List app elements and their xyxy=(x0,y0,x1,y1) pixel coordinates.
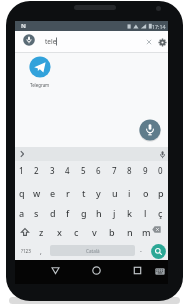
staticText: e xyxy=(50,187,56,199)
staticText: y xyxy=(96,187,101,199)
button[interactable]: 9 xyxy=(138,163,153,177)
button[interactable]: z xyxy=(34,225,49,239)
staticText: 5 xyxy=(81,165,86,176)
staticText: q xyxy=(19,187,25,199)
button[interactable]: , xyxy=(36,244,46,258)
button[interactable]: e xyxy=(45,186,60,200)
staticText: 8 xyxy=(127,165,132,176)
button[interactable] xyxy=(15,31,168,52)
button[interactable]: 8 xyxy=(122,163,137,177)
button[interactable]: i xyxy=(122,186,137,200)
button[interactable]: f xyxy=(60,206,75,220)
staticText: c xyxy=(74,226,79,238)
staticText: tele xyxy=(45,37,57,46)
button[interactable]: Català xyxy=(50,245,135,256)
staticText: s xyxy=(34,207,39,219)
staticText: h xyxy=(96,207,102,219)
button[interactable] xyxy=(139,119,161,141)
button[interactable] xyxy=(159,151,166,159)
button[interactable]: 3 xyxy=(45,163,60,177)
button[interactable]: c xyxy=(69,225,84,239)
button[interactable]: . xyxy=(136,243,146,257)
button[interactable]: p xyxy=(153,186,168,200)
button[interactable]: 2 xyxy=(29,163,44,177)
button[interactable]: g xyxy=(76,206,91,220)
button[interactable]: ?123 xyxy=(17,244,35,258)
staticText: 3 xyxy=(50,165,55,176)
button[interactable]: o xyxy=(138,186,153,200)
button[interactable] xyxy=(29,56,51,78)
staticText: t xyxy=(82,187,86,199)
button[interactable]: 4 xyxy=(60,163,75,177)
staticText: 6 xyxy=(96,165,101,176)
button[interactable]: q xyxy=(14,186,29,200)
staticText: 7 xyxy=(112,165,117,176)
button[interactable]: a xyxy=(14,206,29,220)
button[interactable] xyxy=(51,266,60,275)
button[interactable]: n xyxy=(122,225,137,239)
button[interactable]: 0 xyxy=(153,163,168,177)
staticText: r xyxy=(66,187,70,199)
staticText: 0 xyxy=(158,165,163,176)
staticText: o xyxy=(143,187,149,199)
staticText: 17:14 xyxy=(152,23,166,30)
button[interactable]: b xyxy=(104,225,119,239)
button[interactable]: l xyxy=(138,206,153,220)
staticText: ?123 xyxy=(21,248,31,254)
staticText: b xyxy=(109,226,115,238)
staticText: z xyxy=(39,226,44,238)
staticText: Telegram xyxy=(30,82,50,88)
button[interactable] xyxy=(92,266,101,275)
staticText: f xyxy=(66,207,70,219)
button[interactable]: 1 xyxy=(14,163,29,177)
staticText: 2 xyxy=(34,165,39,176)
staticText: a xyxy=(19,207,25,219)
button[interactable]: u xyxy=(107,186,122,200)
button[interactable]: k xyxy=(122,206,137,220)
staticText: 9 xyxy=(143,165,148,176)
button[interactable]: x xyxy=(52,225,67,239)
button[interactable]: 5 xyxy=(76,163,91,177)
staticText: l xyxy=(144,207,147,219)
staticText: , xyxy=(40,247,42,256)
staticText: Català xyxy=(86,248,100,254)
staticText: d xyxy=(50,207,56,219)
staticText: . xyxy=(140,245,142,255)
button[interactable]: ç xyxy=(153,206,168,220)
button[interactable]: w xyxy=(29,186,44,200)
staticText: ç xyxy=(158,207,163,219)
staticText: N xyxy=(21,22,26,30)
button[interactable] xyxy=(152,226,161,233)
button[interactable]: v xyxy=(87,225,102,239)
staticText: i xyxy=(128,187,131,199)
staticText: 1 xyxy=(19,165,24,176)
button[interactable]: m xyxy=(139,225,154,239)
button[interactable]: r xyxy=(60,186,75,200)
staticText: 4 xyxy=(65,165,70,176)
button[interactable] xyxy=(133,266,142,275)
button[interactable]: 6 xyxy=(91,163,106,177)
button[interactable]: j xyxy=(107,206,122,220)
button[interactable] xyxy=(23,34,35,46)
button[interactable] xyxy=(145,38,153,46)
button[interactable]: 7 xyxy=(107,163,122,177)
button[interactable] xyxy=(158,38,167,47)
button[interactable]: y xyxy=(91,186,106,200)
staticText: v xyxy=(92,226,97,238)
staticText: g xyxy=(81,207,87,219)
button[interactable] xyxy=(21,228,29,236)
staticText: j xyxy=(113,207,116,219)
button[interactable]: d xyxy=(45,206,60,220)
staticText: n xyxy=(127,226,133,238)
staticText: m xyxy=(142,226,151,238)
button[interactable] xyxy=(19,150,25,158)
staticText: p xyxy=(158,187,164,199)
staticText: u xyxy=(112,187,118,199)
button[interactable] xyxy=(151,244,166,259)
button[interactable] xyxy=(155,268,165,275)
button[interactable]: h xyxy=(91,206,106,220)
button[interactable]: s xyxy=(29,206,44,220)
staticText: x xyxy=(57,226,62,238)
staticText: w xyxy=(33,187,41,199)
button[interactable]: t xyxy=(76,186,91,200)
